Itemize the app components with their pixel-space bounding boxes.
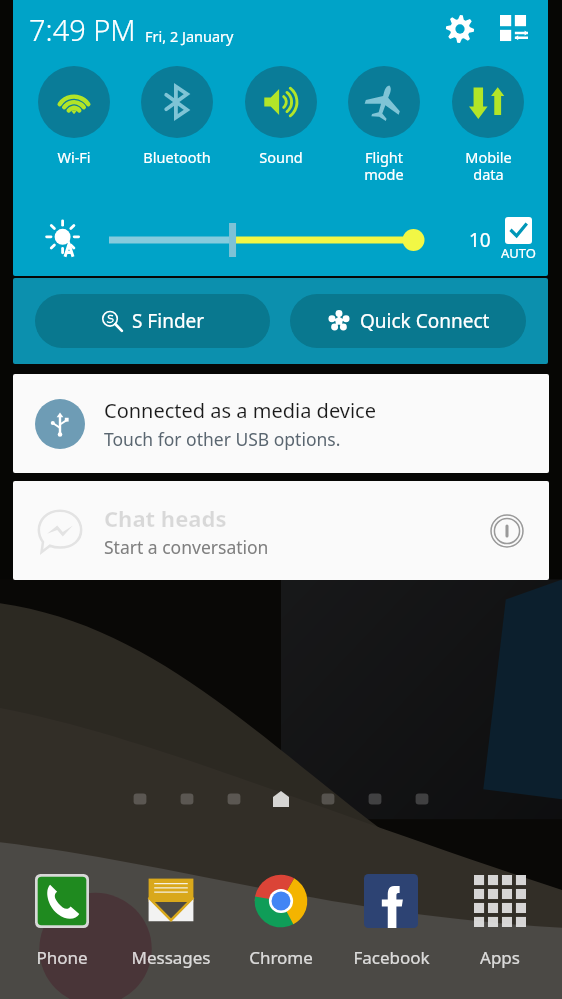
button[interactable]: Mobile data [439, 58, 537, 203]
staticText: Touch for other USB options. [104, 427, 341, 451]
staticText: S Finder [132, 308, 205, 334]
button[interactable]: Phone [10, 851, 114, 969]
button[interactable]: Messages [119, 851, 223, 969]
staticText: Phone [36, 946, 88, 969]
button[interactable]: Connected as a media device [13, 374, 549, 473]
staticText: 10 [469, 227, 491, 253]
staticText: Chat heads [104, 503, 227, 533]
button[interactable]: Edit quick settings [492, 7, 536, 51]
staticText: Messages [131, 946, 211, 969]
button[interactable]: Apps [448, 851, 552, 969]
button[interactable]: Chrome [229, 851, 333, 969]
staticText: Wi-Fi [57, 147, 91, 167]
staticText: Bluetooth [143, 147, 211, 167]
button[interactable]: Bluetooth [128, 58, 226, 203]
staticText: Quick Connect [360, 308, 490, 334]
staticText: Mobile data [465, 147, 512, 184]
staticText: Facebook [353, 946, 430, 969]
button[interactable]: Wi-Fi [25, 58, 123, 203]
button[interactable]: Sound [232, 58, 330, 203]
button[interactable]: Facebook [339, 851, 443, 969]
button[interactable]: Flight mode [335, 58, 433, 203]
staticText: Sound [259, 147, 303, 167]
staticText: Flight mode [364, 147, 404, 184]
staticText: AUTO [501, 244, 536, 262]
button[interactable]: AUTO [501, 217, 536, 262]
staticText: Start a conversation [104, 535, 269, 559]
staticText: Apps [480, 946, 520, 969]
button[interactable]: Notification info [487, 511, 527, 551]
button[interactable]: S Finder [35, 294, 270, 348]
button[interactable] [109, 220, 457, 260]
staticText: Connected as a media device [104, 397, 376, 424]
staticText: Fri, 2 January [145, 26, 234, 46]
button[interactable]: Quick Connect [290, 294, 526, 348]
staticText: Chrome [249, 946, 313, 969]
staticText: 7:49 PM [29, 10, 136, 49]
button[interactable]: Settings [438, 7, 482, 51]
button[interactable]: Chat heads [13, 481, 549, 580]
